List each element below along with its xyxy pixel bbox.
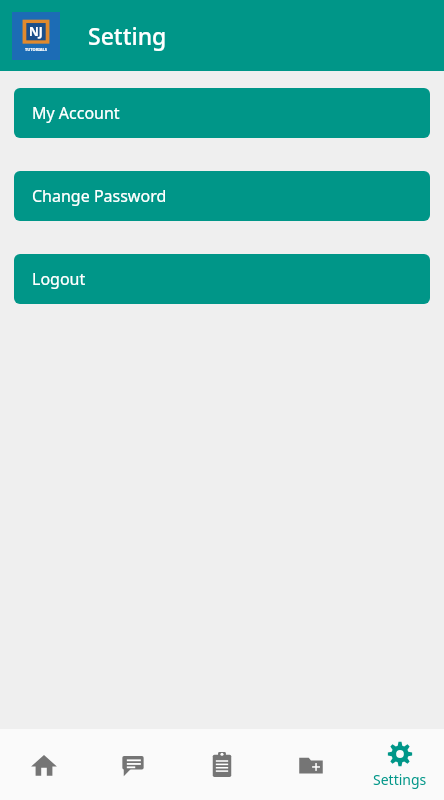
button[interactable]: Tasks (177, 729, 266, 800)
staticText: TUTORIALS (12, 47, 60, 52)
staticText: Settings (373, 770, 427, 789)
staticText: Setting (88, 20, 167, 51)
button[interactable]: Add folder (266, 729, 355, 800)
button[interactable]: Logout (14, 254, 430, 304)
button[interactable]: Messages (88, 729, 177, 800)
staticText: NJ (29, 23, 43, 39)
button[interactable]: My Account (14, 88, 430, 138)
staticText: Change Password (32, 185, 167, 207)
staticText: My Account (32, 102, 120, 124)
staticText: Logout (32, 268, 86, 290)
button[interactable]: Change Password (14, 171, 430, 221)
button[interactable]: Settings (355, 729, 444, 800)
button[interactable]: Home (0, 729, 88, 800)
